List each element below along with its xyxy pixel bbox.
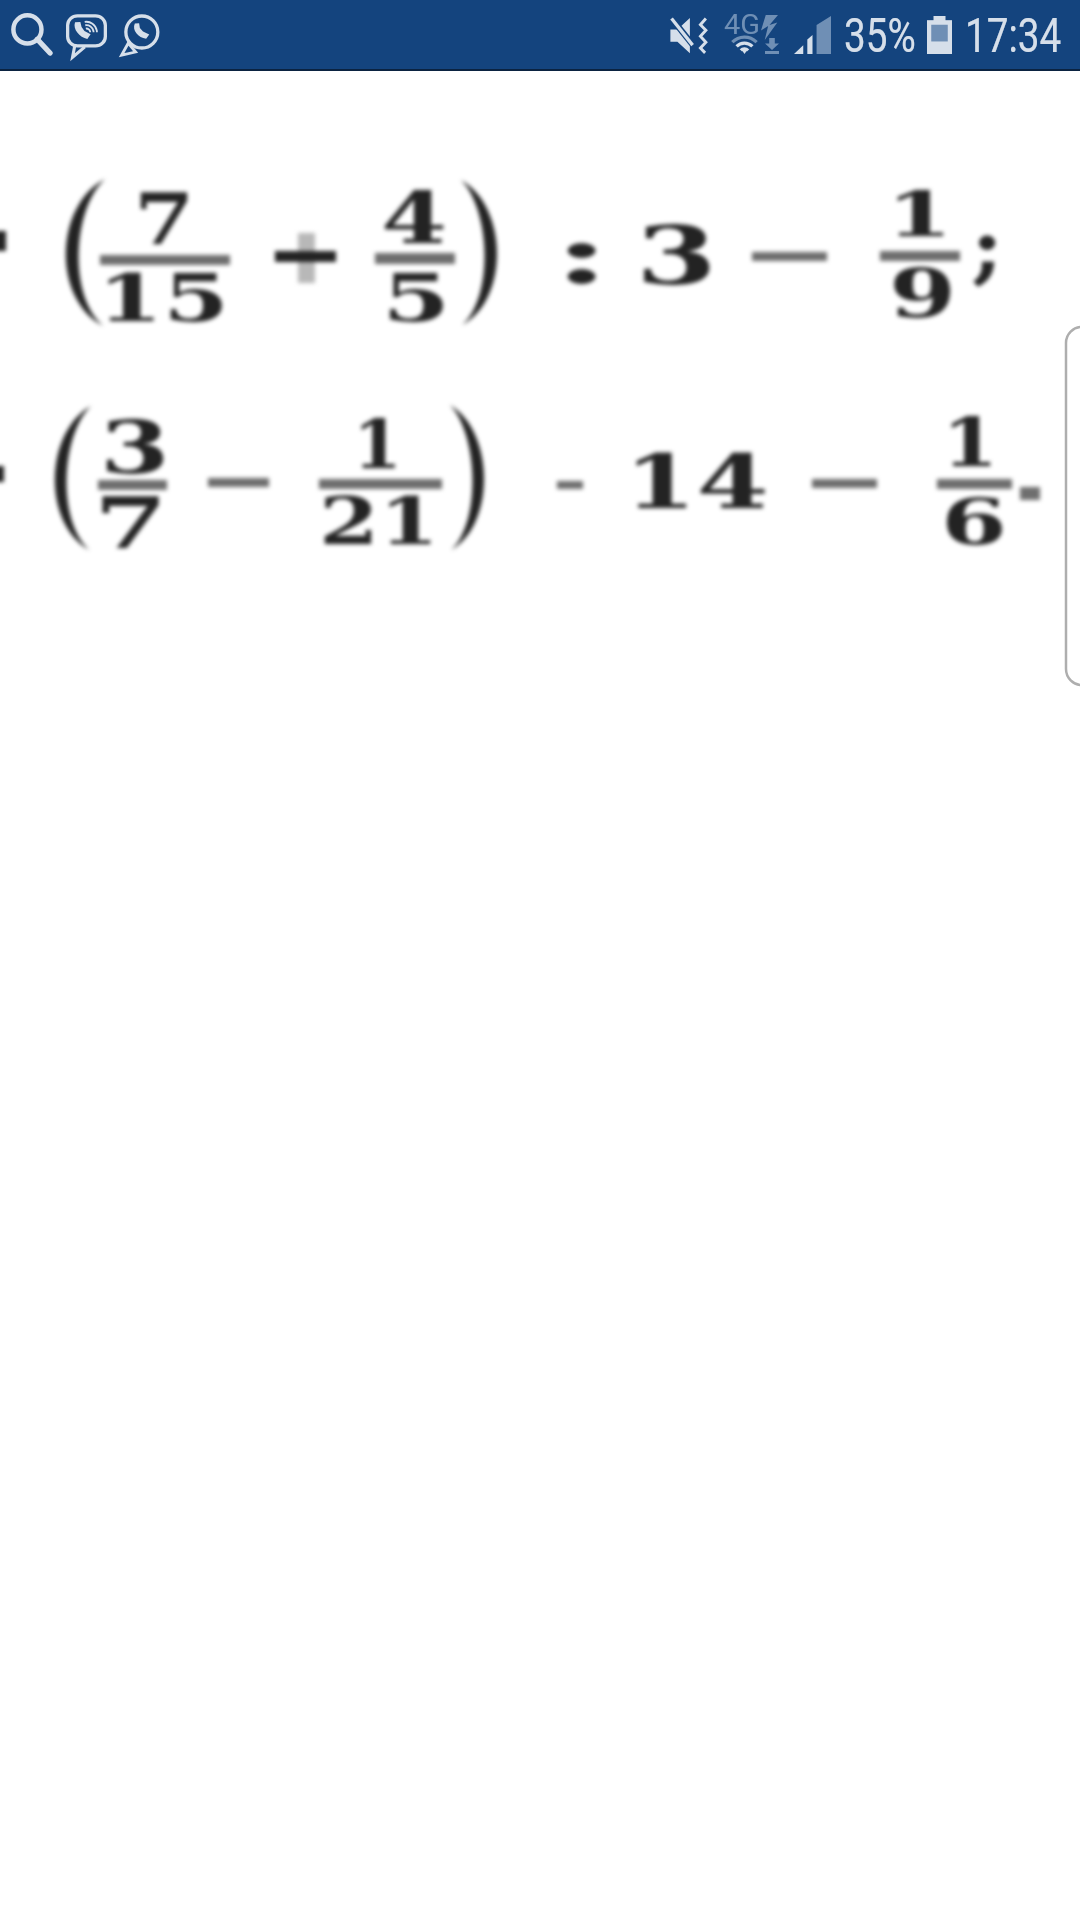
staticText: 9 bbox=[889, 254, 957, 332]
staticText: 7 bbox=[134, 177, 195, 260]
staticText: 21 bbox=[319, 483, 440, 559]
button[interactable]: Photo bbox=[0, 0, 1080, 1920]
staticText: 4G bbox=[724, 9, 761, 41]
staticText: 1 bbox=[886, 179, 954, 250]
staticText: 14 bbox=[624, 437, 770, 526]
staticText: 5 bbox=[382, 259, 452, 337]
staticText: 1 bbox=[942, 403, 999, 482]
staticText: 6 bbox=[941, 484, 1008, 559]
staticText: 7 bbox=[94, 481, 169, 564]
staticText: 1 bbox=[353, 405, 403, 484]
button[interactable]: Viber bbox=[66, 15, 107, 58]
staticText: 35% bbox=[844, 8, 916, 64]
staticText: : bbox=[554, 208, 610, 302]
staticText: 17:34 bbox=[965, 8, 1062, 64]
button[interactable]: WhatsApp bbox=[120, 16, 159, 56]
staticText: 15 bbox=[97, 260, 229, 337]
staticText: 4 bbox=[381, 177, 447, 260]
staticText: ; bbox=[971, 201, 1003, 293]
staticText: 3 bbox=[100, 404, 171, 490]
button[interactable]: Search bbox=[13, 15, 52, 55]
staticText: 3 bbox=[636, 208, 717, 304]
